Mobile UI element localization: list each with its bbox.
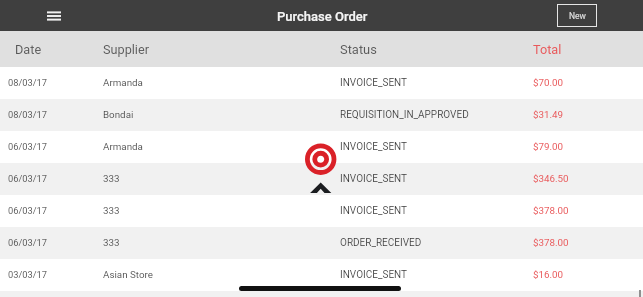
staticText: 03/03/17 <box>8 269 48 280</box>
staticText: 06/03/17 <box>8 141 48 152</box>
button[interactable]: 08/03/17 <box>0 67 643 99</box>
staticText: INVOICE_SENT <box>340 77 408 89</box>
staticText: INVOICE_SENT <box>340 141 408 153</box>
staticText: $79.00 <box>533 141 564 152</box>
button[interactable] <box>0 291 643 297</box>
staticText: $70.00 <box>533 77 564 88</box>
button[interactable]: New <box>557 4 597 27</box>
staticText: $378.00 <box>533 205 569 216</box>
button[interactable]: 03/03/17 <box>0 259 643 291</box>
staticText: Asian Store <box>103 269 153 280</box>
staticText: New <box>569 11 586 21</box>
staticText: $16.00 <box>533 269 564 280</box>
staticText: 06/03/17 <box>8 173 48 184</box>
staticText: 333 <box>103 173 120 184</box>
staticText: Supplier <box>103 42 149 57</box>
staticText: Purchase Order <box>277 9 368 24</box>
staticText: ORDER_RECEIVED <box>340 237 422 249</box>
button[interactable]: 06/03/17 <box>0 195 643 227</box>
button[interactable]: 06/03/17 <box>0 227 643 259</box>
staticText: $346.50 <box>533 173 569 184</box>
staticText: REQUISITION_IN_APPROVED <box>340 109 469 121</box>
button[interactable]: 08/03/17 <box>0 99 643 131</box>
staticText: Armanda <box>103 141 143 152</box>
button[interactable]: Open navigation menu <box>38 0 70 31</box>
staticText: Bondai <box>103 109 134 120</box>
staticText: 333 <box>103 205 120 216</box>
staticText: Total <box>533 42 562 57</box>
staticText: INVOICE_SENT <box>340 173 408 185</box>
staticText: Status <box>340 42 377 57</box>
staticText: INVOICE_SENT <box>340 205 408 217</box>
staticText: 06/03/17 <box>8 205 48 216</box>
staticText: 06/03/17 <box>8 237 48 248</box>
staticText: Date <box>15 42 42 57</box>
staticText: 08/03/17 <box>8 109 48 120</box>
button[interactable]: 06/03/17 <box>0 131 643 163</box>
staticText: $378.00 <box>533 237 569 248</box>
staticText: 08/03/17 <box>8 77 48 88</box>
staticText: INVOICE_SENT <box>340 269 408 281</box>
staticText: Armanda <box>103 77 143 88</box>
staticText: 333 <box>103 237 120 248</box>
staticText: $31.49 <box>533 109 564 120</box>
button[interactable]: 06/03/17 <box>0 163 643 195</box>
